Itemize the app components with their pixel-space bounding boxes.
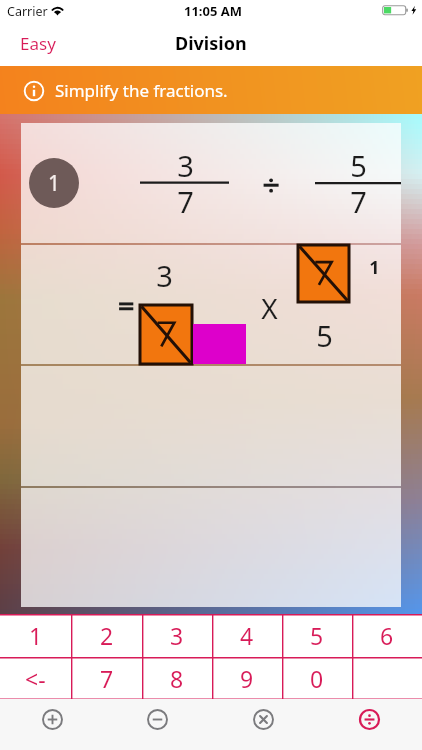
button[interactable]: 6 [352, 614, 422, 657]
staticText: <- [25, 663, 46, 694]
staticText: 7 [177, 182, 194, 221]
button[interactable]: Cancelled 7 [140, 305, 192, 364]
staticText: 7 [100, 663, 114, 694]
staticText: 3 [177, 146, 194, 185]
staticText: Easy [20, 32, 56, 55]
staticText: 8 [170, 663, 184, 694]
button[interactable]: 1 [29, 158, 79, 208]
staticText: Simplify the fractions. [55, 79, 228, 102]
staticText: 7 [350, 182, 367, 221]
button[interactable]: Cancelled 7 [298, 245, 349, 302]
button[interactable]: Easy [14, 26, 62, 61]
button[interactable]: 0 [282, 657, 352, 699]
staticText: X [261, 289, 278, 327]
button[interactable] [352, 657, 422, 699]
button[interactable]: 7 [71, 657, 142, 699]
staticText: 1 [369, 255, 380, 280]
staticText: 1 [48, 169, 61, 198]
staticText: Division [175, 31, 247, 56]
staticText: Carrier [7, 3, 48, 20]
staticText: 6 [380, 620, 394, 651]
button[interactable]: 2 [71, 614, 142, 657]
staticText: 5 [310, 620, 324, 651]
staticText: 5 [350, 146, 367, 185]
staticText: 11:05 AM [184, 2, 243, 20]
staticText: 5 [316, 316, 333, 355]
button[interactable]: Divide [316, 699, 422, 750]
button[interactable]: 4 [212, 614, 282, 657]
button[interactable]: <- [0, 657, 71, 699]
button[interactable]: 3 [142, 614, 212, 657]
button[interactable]: 5 [282, 614, 352, 657]
button[interactable]: Subtract [105, 699, 210, 750]
staticText: 3 [170, 620, 184, 651]
staticText: 0 [310, 663, 324, 694]
staticText: 9 [240, 663, 254, 694]
staticText: 2 [100, 620, 114, 651]
staticText: 3 [156, 256, 173, 295]
button[interactable]: Add [0, 699, 105, 750]
button[interactable]: 9 [212, 657, 282, 699]
staticText: 4 [240, 620, 254, 651]
button[interactable]: 8 [142, 657, 212, 699]
staticText: 1 [29, 620, 43, 651]
button[interactable]: 1 [0, 614, 71, 657]
button[interactable]: Multiply [210, 699, 316, 750]
